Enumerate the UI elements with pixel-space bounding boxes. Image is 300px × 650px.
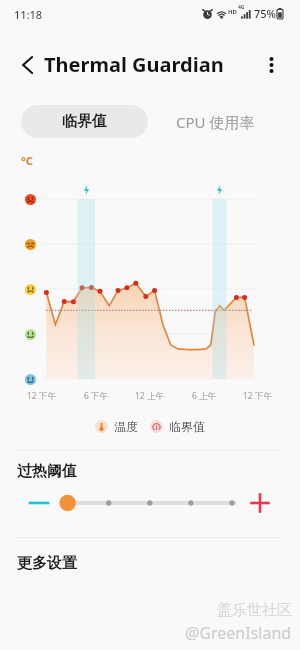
staticText: 更多设置	[17, 554, 77, 573]
button[interactable]: 临界值	[21, 105, 148, 138]
staticText: HD	[228, 8, 237, 16]
staticText: 温度	[114, 419, 138, 434]
button[interactable]: CPU 使用率	[152, 105, 279, 138]
staticText: 12 下午	[27, 390, 56, 402]
staticText: 75%	[254, 6, 276, 21]
staticText: 12 上午	[135, 390, 164, 402]
staticText: Thermal Guardian	[44, 51, 224, 78]
staticText: CPU 使用率	[176, 112, 255, 132]
staticText: @GreenIsland	[185, 622, 292, 644]
staticText: 12 下午	[243, 390, 272, 402]
staticText: 临界值	[62, 112, 107, 131]
button[interactable]: Increase threshold	[246, 489, 274, 517]
staticText: 4G	[238, 4, 245, 11]
staticText: 盖乐世社区	[217, 601, 292, 620]
button[interactable]: Back	[9, 47, 45, 83]
button[interactable]: Decrease threshold	[25, 489, 53, 517]
button[interactable]: 更多设置	[0, 538, 300, 589]
staticText: 过热阈值	[17, 462, 77, 481]
staticText: 6 上午	[192, 390, 217, 402]
staticText: °C	[21, 153, 33, 168]
staticText: 临界值	[169, 419, 205, 434]
staticText: 11:18	[14, 7, 43, 22]
button[interactable]: More options	[253, 47, 289, 83]
staticText: 6 下午	[84, 390, 109, 402]
